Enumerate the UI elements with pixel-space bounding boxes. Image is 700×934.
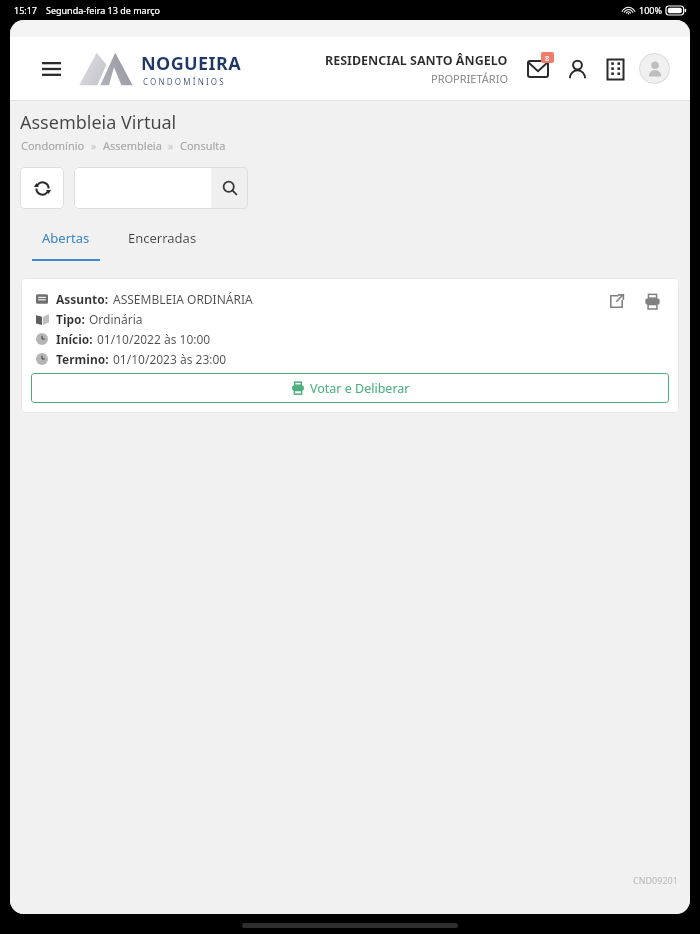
staticText: Termino: [56, 351, 109, 367]
button[interactable]: Menu [36, 54, 66, 84]
button[interactable]: Condomínio [599, 53, 631, 85]
staticText: PROPRIETÁRIO [431, 71, 508, 86]
staticText: » [162, 138, 180, 153]
staticText: ASSEMBLEIA ORDINÁRIA [113, 291, 253, 307]
staticText: Ordinária [89, 311, 143, 327]
staticText: 8 [545, 53, 550, 63]
staticText: Início: [56, 331, 93, 347]
button[interactable]: Atualizar [20, 167, 64, 209]
staticText: Assembleia [103, 138, 162, 153]
button[interactable]: Imprimir [639, 288, 665, 314]
staticText: Encerradas [128, 229, 197, 247]
staticText: CONDOMÍNIOS [143, 76, 226, 87]
staticText: Votar e Deliberar [310, 380, 410, 397]
staticText: 01/10/2023 às 23:00 [113, 351, 227, 367]
button[interactable]: Votar e Deliberar [31, 373, 669, 403]
button[interactable]: Encerradas [116, 223, 209, 253]
button[interactable]: Avatar do usuário [639, 53, 670, 84]
staticText: 100% [639, 4, 662, 16]
button[interactable]: Perfil [561, 53, 593, 85]
staticText: RESIDENCIAL SANTO ÂNGELO [325, 52, 508, 69]
button[interactable]: Mensagens [521, 52, 555, 86]
staticText: Assunto: [56, 291, 109, 307]
staticText: 01/10/2022 às 10:00 [97, 331, 211, 347]
button[interactable]: Abrir em nova janela [603, 288, 629, 314]
button[interactable]: Pesquisar [211, 167, 248, 209]
staticText: NOGUEIRA [141, 51, 242, 76]
button[interactable] [74, 167, 211, 209]
staticText: » [85, 138, 103, 153]
staticText: Tipo: [56, 311, 85, 327]
staticText: Condomínio [21, 138, 85, 153]
staticText: Consulta [180, 138, 226, 153]
staticText: Segunda-feira 13 de março [46, 4, 160, 16]
staticText: 15:17 [14, 4, 38, 16]
staticText: CND09201 [633, 874, 678, 886]
staticText: Assembleia Virtual [20, 110, 177, 135]
button[interactable]: Abertas [30, 223, 102, 253]
staticText: Abertas [42, 229, 90, 247]
